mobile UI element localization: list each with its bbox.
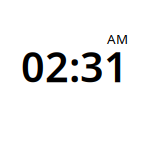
staticText: AM	[107, 30, 128, 48]
staticText: 02:31	[21, 39, 128, 94]
